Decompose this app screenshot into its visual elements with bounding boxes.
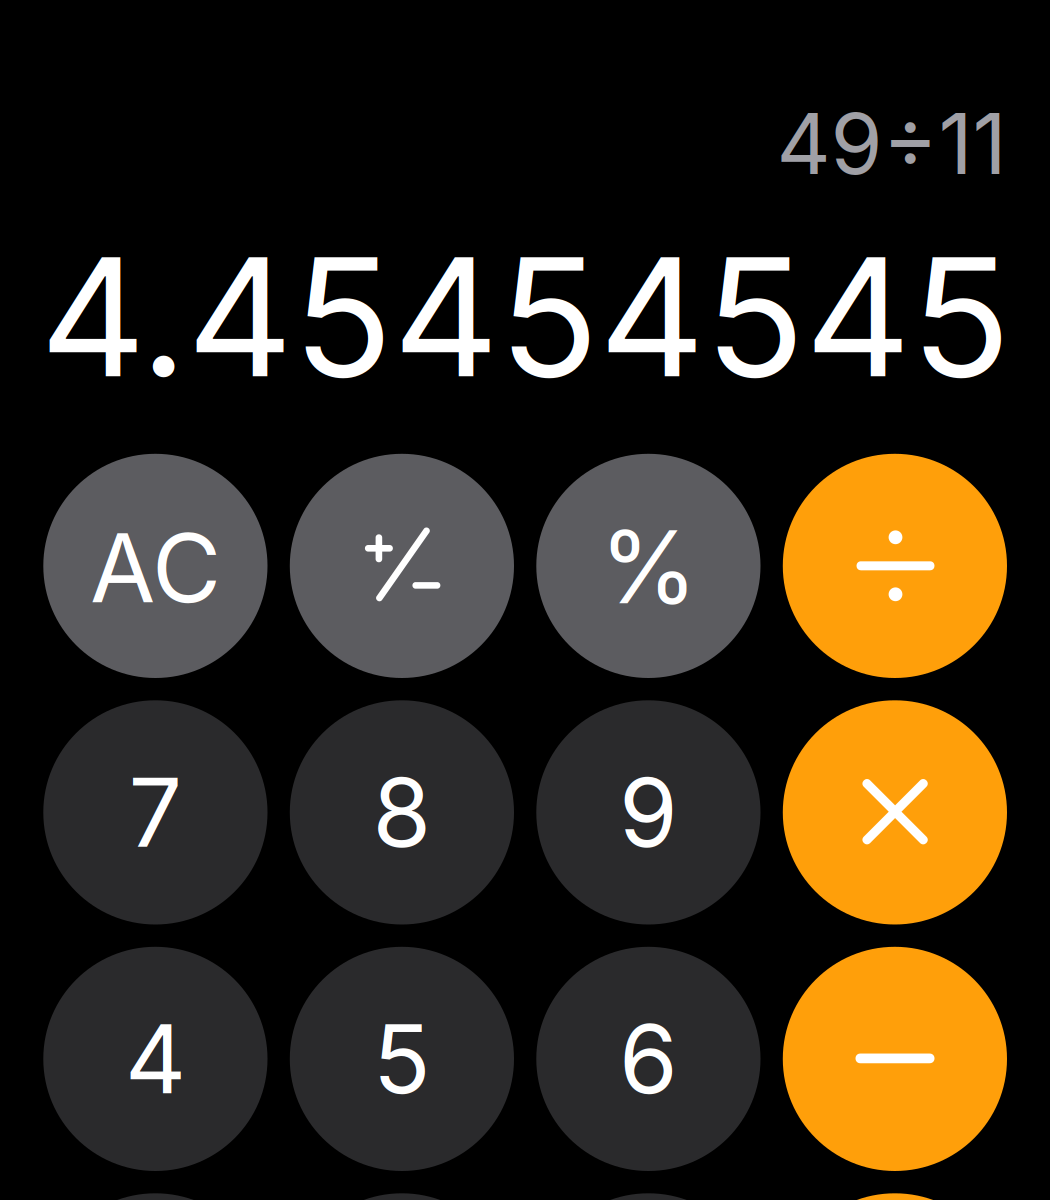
staticText: AC bbox=[90, 511, 221, 625]
button[interactable]: 5 bbox=[290, 947, 514, 1171]
staticText: 9 bbox=[619, 755, 678, 870]
button[interactable]: Subtract bbox=[783, 947, 1007, 1171]
staticText: 4 bbox=[125, 1002, 186, 1116]
button[interactable]: Multiply bbox=[783, 700, 1007, 924]
button[interactable]: 1 bbox=[43, 1193, 267, 1200]
button[interactable]: 6 bbox=[536, 947, 760, 1171]
button[interactable]: 2 bbox=[290, 1193, 514, 1200]
staticText: 8 bbox=[372, 755, 431, 870]
button[interactable]: 3 bbox=[536, 1193, 760, 1200]
button[interactable]: Add bbox=[783, 1193, 1007, 1200]
staticText: % bbox=[599, 506, 697, 627]
staticText: 49÷11 bbox=[776, 93, 1006, 194]
button[interactable]: 7 bbox=[43, 700, 267, 924]
button[interactable]: AC bbox=[43, 454, 267, 678]
staticText: 6 bbox=[619, 1002, 678, 1116]
staticText: 4.45454545 bbox=[40, 217, 1011, 416]
button[interactable]: 9 bbox=[536, 700, 760, 924]
staticText: 5 bbox=[373, 1002, 431, 1116]
staticText: 7 bbox=[128, 755, 182, 870]
button[interactable]: % bbox=[536, 454, 760, 678]
button[interactable]: Toggle sign bbox=[290, 454, 514, 678]
button[interactable]: Divide bbox=[783, 454, 1007, 678]
button[interactable]: 8 bbox=[290, 700, 514, 924]
button[interactable]: 4 bbox=[43, 947, 267, 1171]
